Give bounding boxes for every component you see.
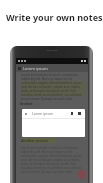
staticText: Lorem ipsum xyxy=(23,66,48,71)
staticText: Lorem ipsum xyxy=(32,111,53,116)
staticText: Lorem ipsum dolor sit amet, consectetur … xyxy=(21,73,84,101)
button[interactable]: Lorem ipsum xyxy=(16,64,88,72)
staticText: Lorem ipsum dolor sit amet, consectetur … xyxy=(21,146,84,174)
staticText: Section xyxy=(20,101,33,106)
button[interactable]: Add note xyxy=(77,170,86,179)
staticText: Write your own notes xyxy=(6,11,103,23)
button[interactable]: Lorem ipsum xyxy=(22,109,85,137)
staticText: Another section xyxy=(21,138,49,143)
